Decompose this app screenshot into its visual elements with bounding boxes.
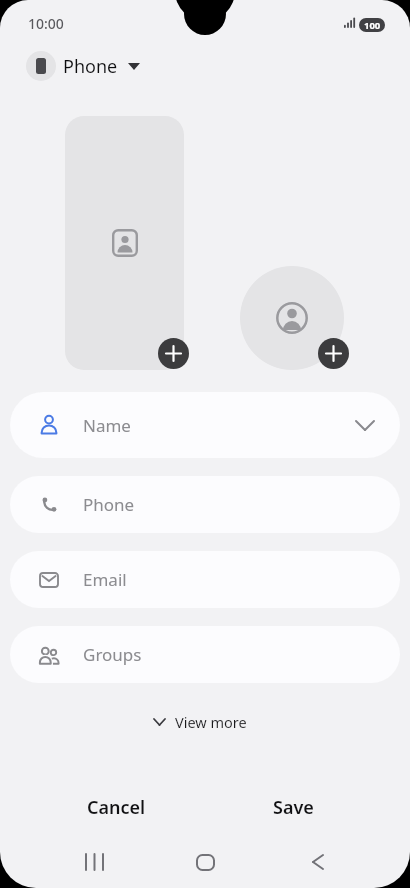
staticText: 100	[364, 19, 381, 32]
button[interactable]	[318, 338, 349, 369]
staticText: Email	[83, 568, 127, 591]
staticText: Save	[273, 795, 314, 820]
staticText: Cancel	[87, 795, 146, 820]
staticText: View more	[175, 712, 247, 732]
button[interactable]: Email	[10, 551, 400, 608]
staticText: Groups	[83, 643, 142, 666]
staticText: 10:00	[28, 14, 64, 33]
button[interactable]: View more	[0, 708, 405, 736]
button[interactable]	[76, 847, 112, 877]
button[interactable]: Name	[10, 392, 400, 458]
staticText: Name	[83, 414, 131, 437]
staticText: Phone	[83, 493, 135, 516]
button[interactable]: Phone	[26, 48, 140, 84]
staticText: Phone	[63, 54, 118, 79]
button[interactable]	[65, 116, 184, 370]
button[interactable]: Cancel	[56, 786, 177, 828]
button[interactable]	[187, 847, 223, 877]
button[interactable]	[300, 847, 336, 877]
button[interactable]: Save	[233, 786, 354, 828]
button[interactable]	[240, 266, 344, 370]
button[interactable]: Phone	[10, 476, 400, 533]
button[interactable]: Groups	[10, 626, 400, 683]
button[interactable]	[158, 338, 189, 369]
